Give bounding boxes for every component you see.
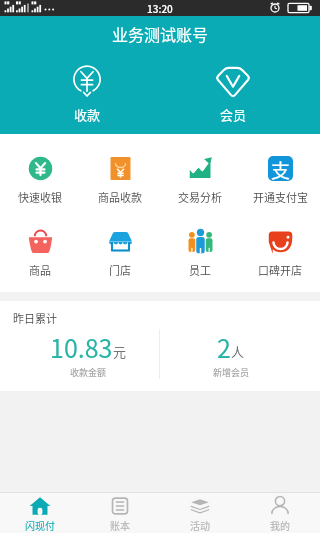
staticText: 收款金额 bbox=[70, 366, 107, 379]
button[interactable]: 交易分析 bbox=[160, 154, 240, 207]
staticText: 活动 bbox=[190, 518, 210, 532]
staticText: 10.83 bbox=[50, 329, 113, 365]
staticText: 开通支付宝 bbox=[253, 189, 308, 205]
staticText: 支 bbox=[271, 156, 291, 181]
staticText: 新增会员 bbox=[213, 366, 250, 379]
staticText: 账本 bbox=[110, 518, 130, 532]
button[interactable]: 商品收款 bbox=[80, 154, 160, 207]
staticText: 2 bbox=[217, 329, 231, 365]
button[interactable]: 门店 bbox=[80, 227, 160, 280]
staticText: 商品收款 bbox=[98, 189, 142, 205]
staticText: 口碑开店 bbox=[258, 262, 302, 278]
button[interactable]: 10.83 bbox=[18, 326, 159, 382]
button[interactable]: 闪现付 bbox=[0, 493, 80, 533]
staticText: 交易分析 bbox=[178, 189, 222, 205]
button[interactable]: 快速收银 bbox=[0, 154, 80, 207]
button[interactable]: 2 bbox=[160, 326, 302, 382]
button[interactable]: 员工 bbox=[160, 227, 240, 280]
button[interactable]: 账本 bbox=[80, 493, 160, 533]
button[interactable]: 收款 bbox=[50, 64, 124, 125]
staticText: 会员 bbox=[220, 105, 247, 124]
staticText: 员工 bbox=[189, 262, 211, 278]
button[interactable]: 口碑开店 bbox=[240, 227, 320, 280]
staticText: 元 bbox=[113, 342, 127, 361]
staticText: 收款 bbox=[74, 105, 101, 124]
staticText: 我的 bbox=[270, 518, 290, 532]
staticText: 闪现付 bbox=[25, 518, 55, 532]
staticText: 人 bbox=[231, 342, 245, 361]
staticText: 13:20 bbox=[147, 1, 173, 15]
button[interactable]: 商品 bbox=[0, 227, 80, 280]
button[interactable]: 支 bbox=[240, 154, 320, 207]
button[interactable]: 会员 bbox=[196, 64, 270, 125]
staticText: 昨日累计 bbox=[13, 310, 57, 326]
staticText: 快速收银 bbox=[18, 189, 62, 205]
staticText: 商品 bbox=[29, 262, 51, 278]
staticText: 业务测试账号 bbox=[112, 22, 209, 45]
button[interactable]: 我的 bbox=[240, 493, 320, 533]
button[interactable]: 活动 bbox=[160, 493, 240, 533]
staticText: 门店 bbox=[109, 262, 131, 278]
